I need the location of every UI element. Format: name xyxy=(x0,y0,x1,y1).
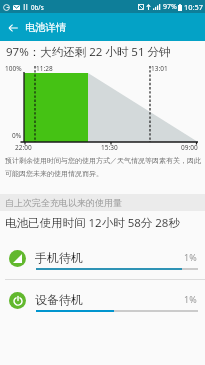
staticText: 22:00 xyxy=(15,143,32,152)
staticText: 可能因您未来的使用情况而异。 xyxy=(5,169,103,178)
staticText: 电池详情 xyxy=(25,21,67,34)
staticText: 手机待机 xyxy=(35,250,83,265)
staticText: 15:30 xyxy=(101,143,118,152)
staticText: 97% xyxy=(163,2,177,12)
staticText: 11:28 xyxy=(36,64,53,73)
staticText: 0b/s xyxy=(31,3,44,11)
staticText: 设备待机 xyxy=(35,292,83,307)
staticText: 1% xyxy=(184,251,197,263)
staticText: 10:57 xyxy=(184,2,203,12)
staticText: 97%：大约还剩 22 小时 51 分钟 xyxy=(6,44,171,60)
staticText: 0% xyxy=(12,131,22,140)
staticText: 13:01 xyxy=(151,64,168,73)
staticText: 100% xyxy=(5,64,22,73)
staticText: 电池已使用时间 12小时 58分 28秒 xyxy=(5,215,180,231)
staticText: 预计剩余使用时间与您的使用方式／天气情况等因素有关，因此 xyxy=(5,156,201,165)
staticText: 1% xyxy=(184,293,197,305)
button[interactable]: 手机待机 xyxy=(0,242,205,277)
button[interactable]: 设备待机 xyxy=(0,284,205,319)
staticText: 自上次完全充电以来的使用量 xyxy=(5,197,122,208)
button[interactable]: 返回 xyxy=(0,15,25,40)
staticText: 09:00 xyxy=(181,143,198,152)
